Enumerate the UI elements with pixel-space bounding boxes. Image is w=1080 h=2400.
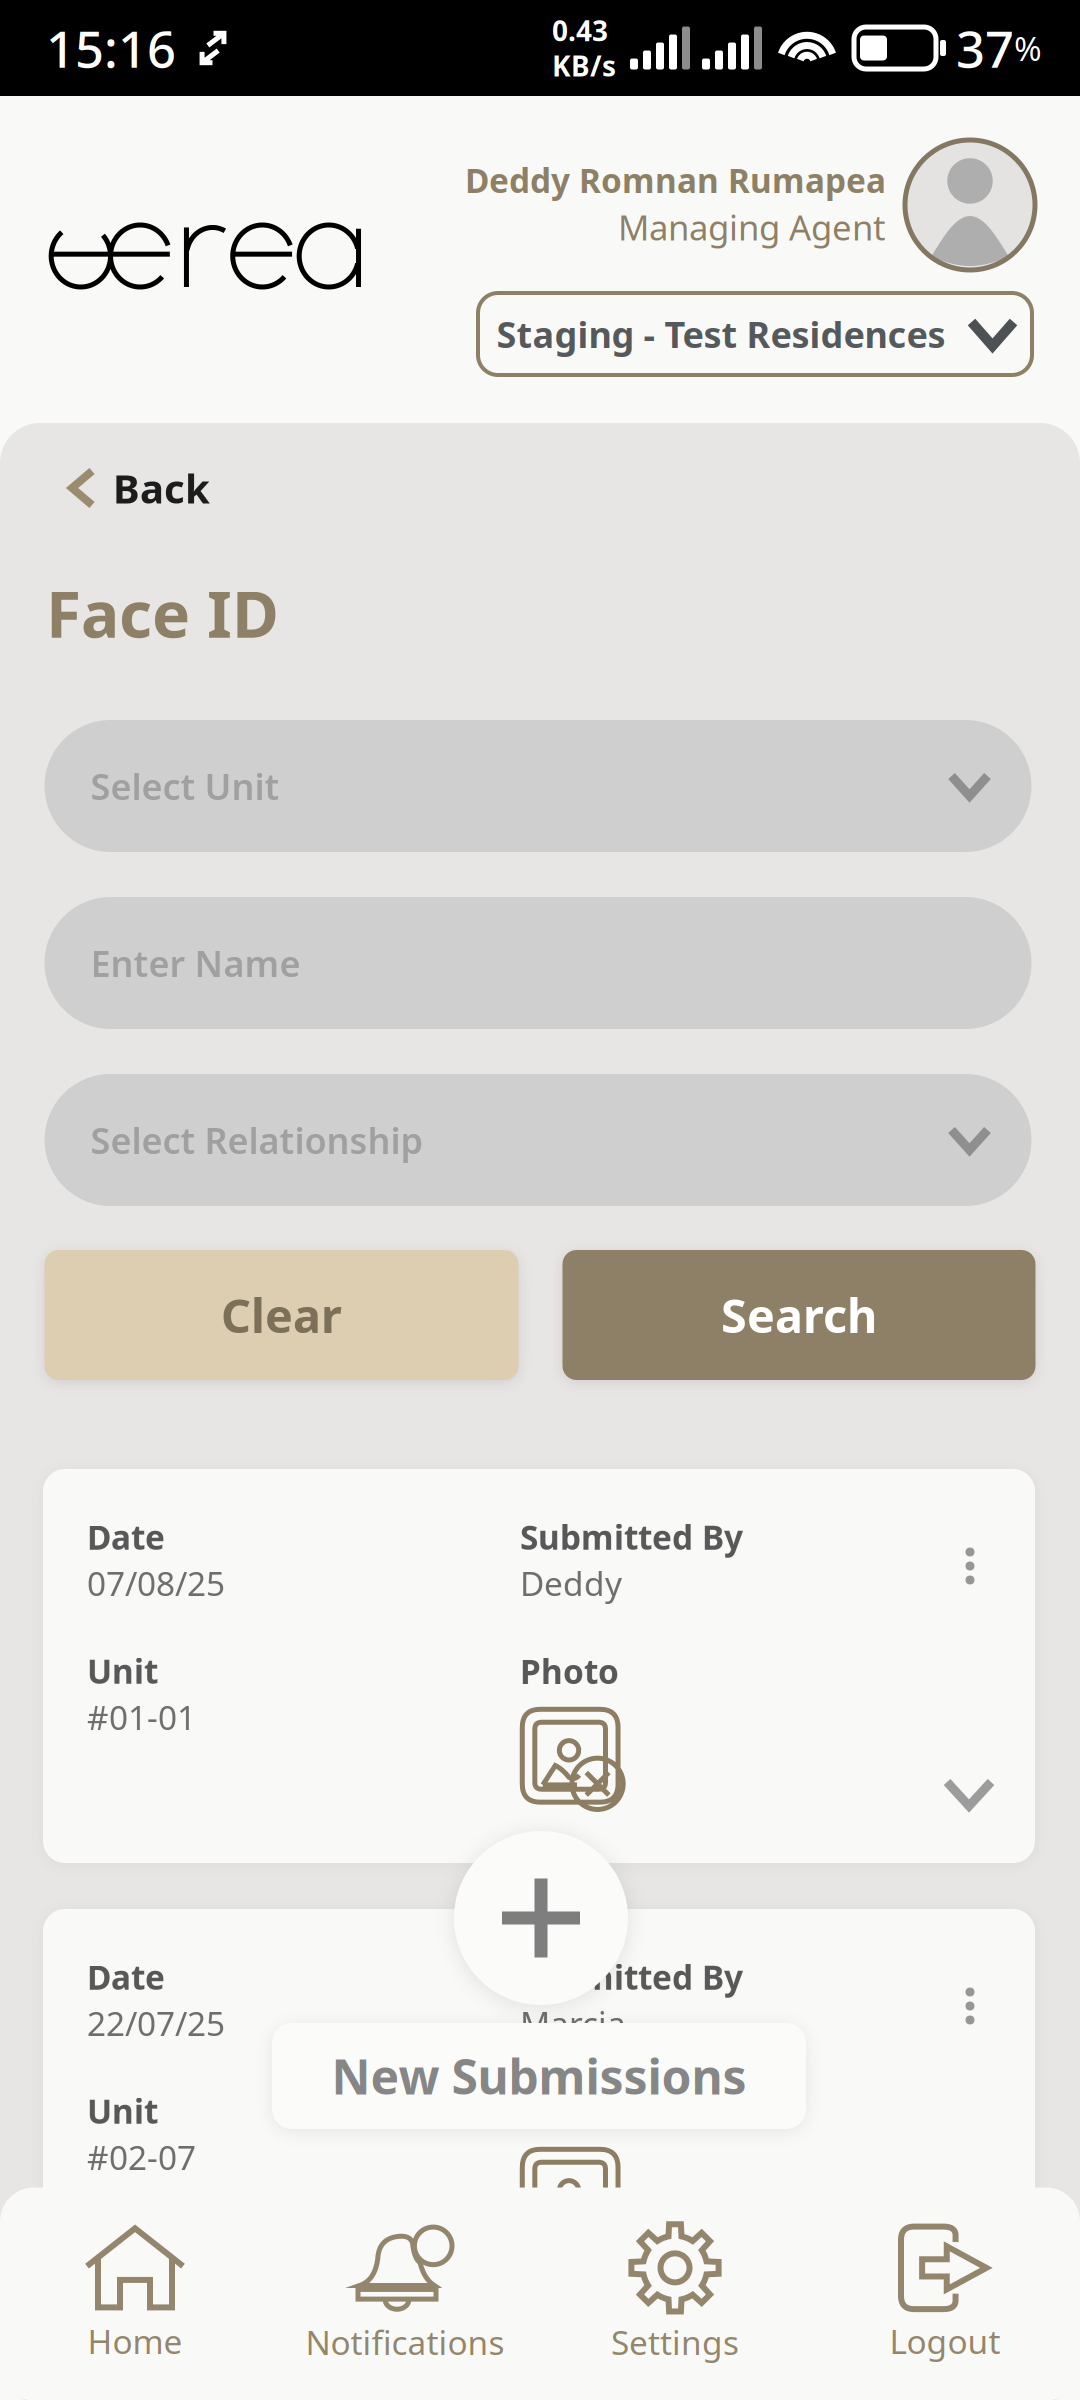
button[interactable]: More options: [940, 1973, 1000, 2039]
staticText: #01-01: [87, 1695, 196, 1739]
staticText: 15:16: [46, 14, 176, 82]
staticText: 07/08/25: [87, 1561, 225, 1605]
staticText: Unit: [87, 1649, 158, 1693]
button[interactable]: Settings: [540, 2212, 810, 2376]
staticText: Deddy: [520, 1561, 622, 1605]
staticText: New Submissions: [331, 2044, 746, 2108]
staticText: KB/s: [552, 47, 616, 84]
staticText: Date: [87, 1955, 165, 1999]
staticText: Settings: [611, 2320, 739, 2364]
button[interactable]: Select Unit: [44, 720, 1031, 852]
button[interactable]: Back: [0, 445, 1080, 531]
staticText: Photo: [520, 2089, 619, 2133]
staticText: Select Relationship: [90, 1116, 423, 1164]
staticText: Notifications: [305, 2320, 504, 2364]
button[interactable]: New Submissions: [272, 2023, 806, 2129]
staticText: Select Unit: [90, 762, 279, 810]
button[interactable]: Profile: [903, 138, 1037, 272]
button[interactable]: Expand: [929, 1759, 1009, 1829]
staticText: Clear: [221, 1284, 342, 1346]
button[interactable]: Logout: [810, 2212, 1080, 2376]
staticText: Search: [721, 1284, 877, 1346]
staticText: 22/07/25: [87, 2001, 225, 2045]
staticText: Submitted By: [520, 1955, 743, 1999]
staticText: Photo: [520, 1649, 619, 1693]
staticText: Logout: [889, 2319, 1000, 2363]
button[interactable]: Search: [562, 1250, 1035, 1380]
button[interactable]: Home: [0, 2212, 270, 2376]
staticText: %: [1014, 26, 1042, 70]
staticText: Enter Name: [90, 939, 300, 987]
button[interactable]: Add: [452, 1829, 630, 2007]
staticText: Managing Agent: [618, 204, 886, 250]
button[interactable]: Clear: [44, 1250, 518, 1380]
staticText: Marcia: [520, 2001, 626, 2045]
button[interactable]: Staging - Test Residences: [478, 293, 1032, 375]
button[interactable]: Enter Name: [44, 897, 1031, 1029]
staticText: 0.43: [552, 12, 608, 49]
staticText: Home: [87, 2319, 182, 2363]
button[interactable]: Select Relationship: [44, 1074, 1031, 1206]
staticText: 37: [956, 14, 1014, 82]
button[interactable]: More options: [940, 1533, 1000, 1599]
staticText: #02-07: [87, 2135, 196, 2179]
staticText: Deddy Romnan Rumapea: [465, 158, 886, 202]
staticText: Back: [113, 461, 210, 514]
staticText: Staging - Test Residences: [496, 310, 945, 358]
staticText: Date: [87, 1515, 165, 1559]
button[interactable]: Notifications: [270, 2212, 540, 2376]
staticText: Unit: [87, 2089, 158, 2133]
staticText: Submitted By: [520, 1515, 743, 1559]
staticText: Face ID: [46, 570, 279, 655]
button[interactable]: Expand: [929, 2199, 1009, 2269]
